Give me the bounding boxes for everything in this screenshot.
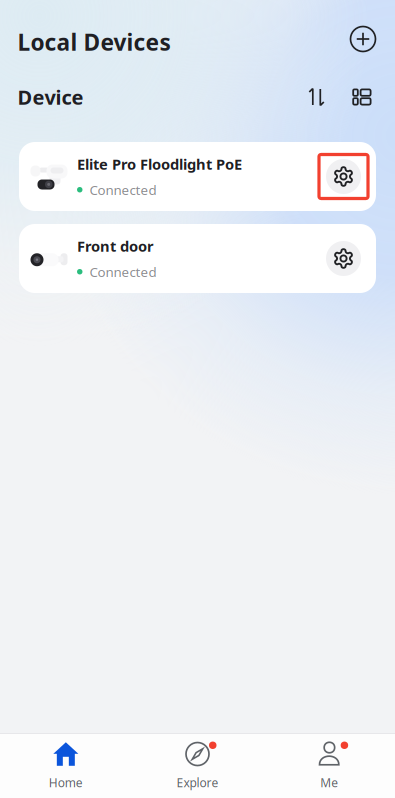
button[interactable]: Device settings xyxy=(319,236,368,280)
staticText: Local Devices xyxy=(17,27,170,57)
staticText: Explore xyxy=(176,774,218,790)
staticText: Elite Pro Floodlight PoE xyxy=(77,154,242,174)
button[interactable]: Explore xyxy=(132,735,263,797)
staticText: Connected xyxy=(89,263,156,281)
button[interactable]: Home xyxy=(0,735,132,797)
staticText: Home xyxy=(49,774,83,790)
staticText: Device xyxy=(17,84,83,110)
staticText: Front door xyxy=(77,236,154,256)
button[interactable]: Me xyxy=(263,735,395,797)
staticText: Connected xyxy=(89,181,156,199)
button[interactable]: Add device xyxy=(350,26,375,51)
staticText: Me xyxy=(320,774,338,790)
button[interactable]: Change layout xyxy=(352,88,371,105)
button[interactable]: Sort devices xyxy=(308,87,325,107)
button[interactable]: Device settings xyxy=(319,154,368,198)
